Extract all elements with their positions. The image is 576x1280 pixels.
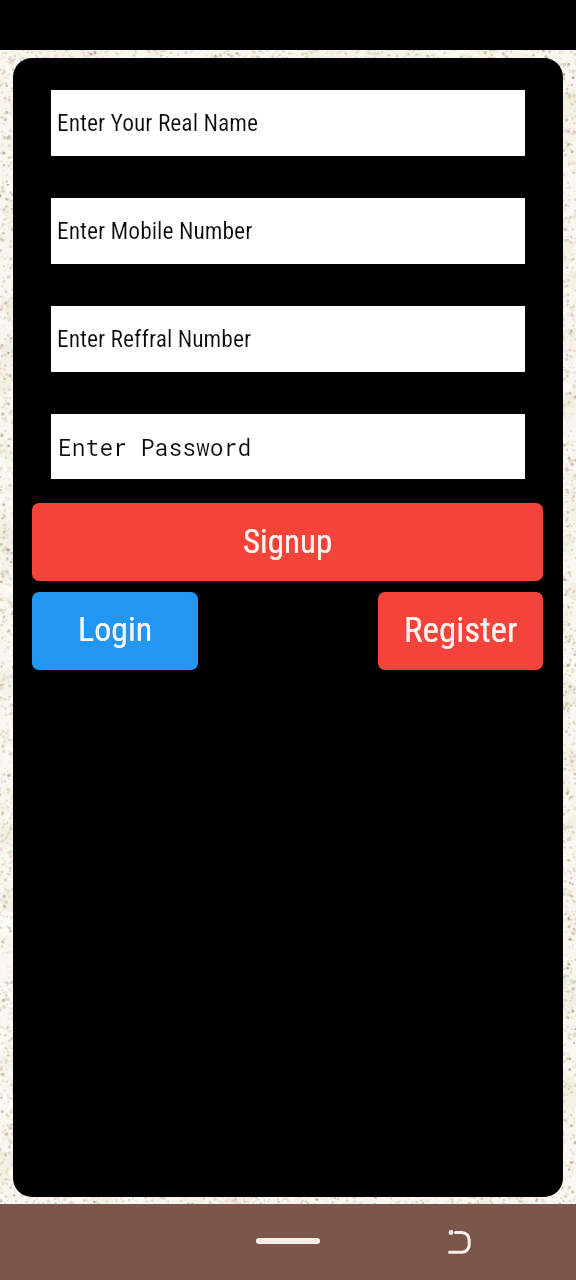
staticText: Enter Mobile Number — [57, 217, 253, 245]
button[interactable]: Register — [378, 592, 543, 670]
button[interactable]: Home — [238, 1218, 338, 1264]
button[interactable]: Signup — [32, 503, 543, 581]
staticText: Register — [404, 610, 518, 651]
staticText: Login — [78, 609, 153, 649]
button[interactable]: Back — [433, 1214, 489, 1270]
button[interactable]: Login — [32, 592, 198, 670]
staticText: Enter Reffral Number — [57, 325, 252, 353]
button[interactable]: Enter Password — [51, 414, 525, 479]
staticText: Signup — [243, 522, 333, 561]
button[interactable]: Enter Mobile Number — [51, 198, 525, 264]
button[interactable]: Enter Reffral Number — [51, 306, 525, 372]
staticText: Enter Password — [58, 432, 252, 462]
staticText: Enter Your Real Name — [57, 109, 258, 137]
button[interactable]: Enter Your Real Name — [51, 90, 525, 156]
